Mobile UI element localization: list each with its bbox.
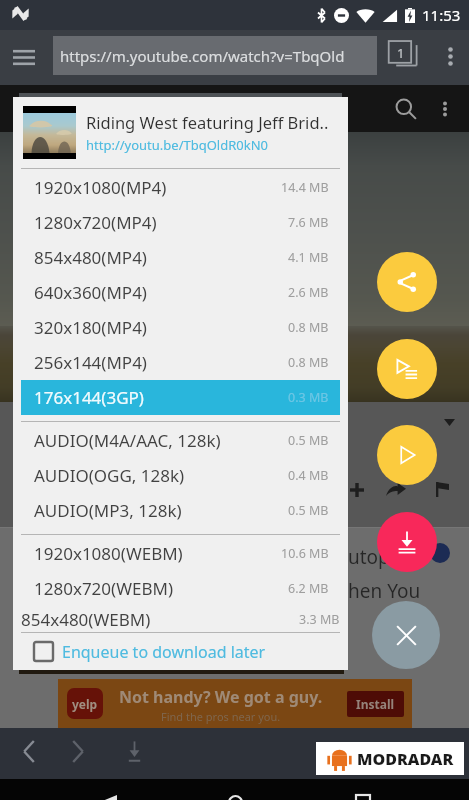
staticText: 0.5 MB: [288, 432, 329, 449]
button[interactable]: 640x360(MP4): [21, 275, 340, 310]
staticText: 854x480(MP4): [34, 246, 147, 269]
button[interactable]: 854x480(WEBM): [13, 606, 348, 632]
button[interactable]: Tabs: [386, 39, 420, 73]
staticText: 0.8 MB: [288, 354, 329, 371]
staticText: 10.6 MB: [281, 545, 329, 562]
staticText: 14.4 MB: [281, 179, 329, 196]
staticText: hen You: [348, 578, 421, 604]
staticText: 1920x1080(WEBM): [34, 542, 183, 565]
staticText: https://m.youtube.com/watch?v=TbqOld: [60, 46, 345, 66]
staticText: AUDIO(M4A/AAC, 128k): [34, 429, 221, 452]
staticText: 2.6 MB: [288, 284, 329, 301]
staticText: 0.8 MB: [288, 319, 329, 336]
button[interactable]: 320x180(MP4): [21, 310, 340, 345]
staticText: 1920x1080(MP4): [34, 176, 167, 199]
button[interactable]: Search: [385, 88, 427, 130]
button[interactable]: 1920x1080(MP4): [21, 170, 340, 205]
button[interactable]: More options: [427, 91, 463, 127]
staticText: Enqueue to download later: [62, 641, 266, 663]
staticText: AUDIO(MP3, 128k): [34, 499, 182, 522]
staticText: Not handy? We got a guy.: [119, 686, 323, 708]
staticText: 4.1 MB: [288, 249, 329, 266]
staticText: 0.5 MB: [288, 502, 329, 519]
staticText: 256x144(MP4): [34, 351, 147, 374]
staticText: 176x144(3GP): [34, 386, 144, 409]
button[interactable]: 1280x720(MP4): [21, 205, 340, 240]
button[interactable]: Install: [347, 691, 404, 717]
staticText: 3.3 MB: [299, 611, 340, 628]
button[interactable]: Play: [377, 425, 437, 485]
button[interactable]: Download: [377, 512, 437, 572]
staticText: 854x480(WEBM): [21, 608, 151, 631]
button[interactable]: AUDIO(OGG, 128k): [21, 458, 340, 493]
button[interactable]: Downloads: [115, 732, 153, 770]
button[interactable]: Enqueue to download later: [13, 633, 348, 670]
button[interactable]: Share: [377, 252, 437, 312]
staticText: 320x180(MP4): [34, 316, 147, 339]
staticText: yelp: [72, 696, 98, 712]
staticText: 1280x720(WEBM): [34, 577, 173, 600]
staticText: 11:53: [422, 5, 461, 25]
staticText: 0.4 MB: [288, 467, 329, 484]
button[interactable]: More options: [434, 40, 466, 72]
button[interactable]: 854x480(MP4): [21, 240, 340, 275]
button[interactable]: AUDIO(M4A/AAC, 128k): [21, 423, 340, 458]
button[interactable]: 176x144(3GP): [21, 380, 340, 415]
staticText: 1: [397, 44, 405, 62]
button[interactable]: yelp: [58, 679, 412, 728]
button[interactable]: Back: [10, 732, 48, 770]
staticText: utop: [348, 544, 390, 570]
button[interactable]: https://m.youtube.com/watch?v=TbqOld: [53, 36, 377, 75]
staticText: 0.3 MB: [288, 389, 329, 406]
staticText: 1280x720(MP4): [34, 211, 157, 234]
button[interactable]: 256x144(MP4): [21, 345, 340, 380]
button[interactable]: Close: [372, 601, 440, 669]
staticText: MODRADAR: [357, 748, 454, 770]
staticText: http://youtu.be/TbqOldR0kN0: [86, 136, 268, 154]
staticText: 640x360(MP4): [34, 281, 147, 304]
button[interactable]: 1280x720(WEBM): [21, 571, 340, 606]
button[interactable]: 1920x1080(WEBM): [21, 536, 340, 571]
staticText: 6.2 MB: [288, 580, 329, 597]
button[interactable]: MODRADAR: [316, 742, 464, 775]
staticText: 7.6 MB: [288, 214, 329, 231]
staticText: AUDIO(OGG, 128k): [34, 464, 185, 487]
button[interactable]: AUDIO(MP3, 128k): [21, 493, 340, 528]
staticText: Riding West featuring Jeff Brid..: [86, 111, 329, 133]
button[interactable]: Add to playlist: [377, 339, 437, 399]
button[interactable]: Menu: [6, 40, 41, 75]
button[interactable]: Forward: [59, 732, 97, 770]
staticText: Find the pros near you.: [161, 709, 281, 724]
staticText: Install: [356, 696, 395, 712]
